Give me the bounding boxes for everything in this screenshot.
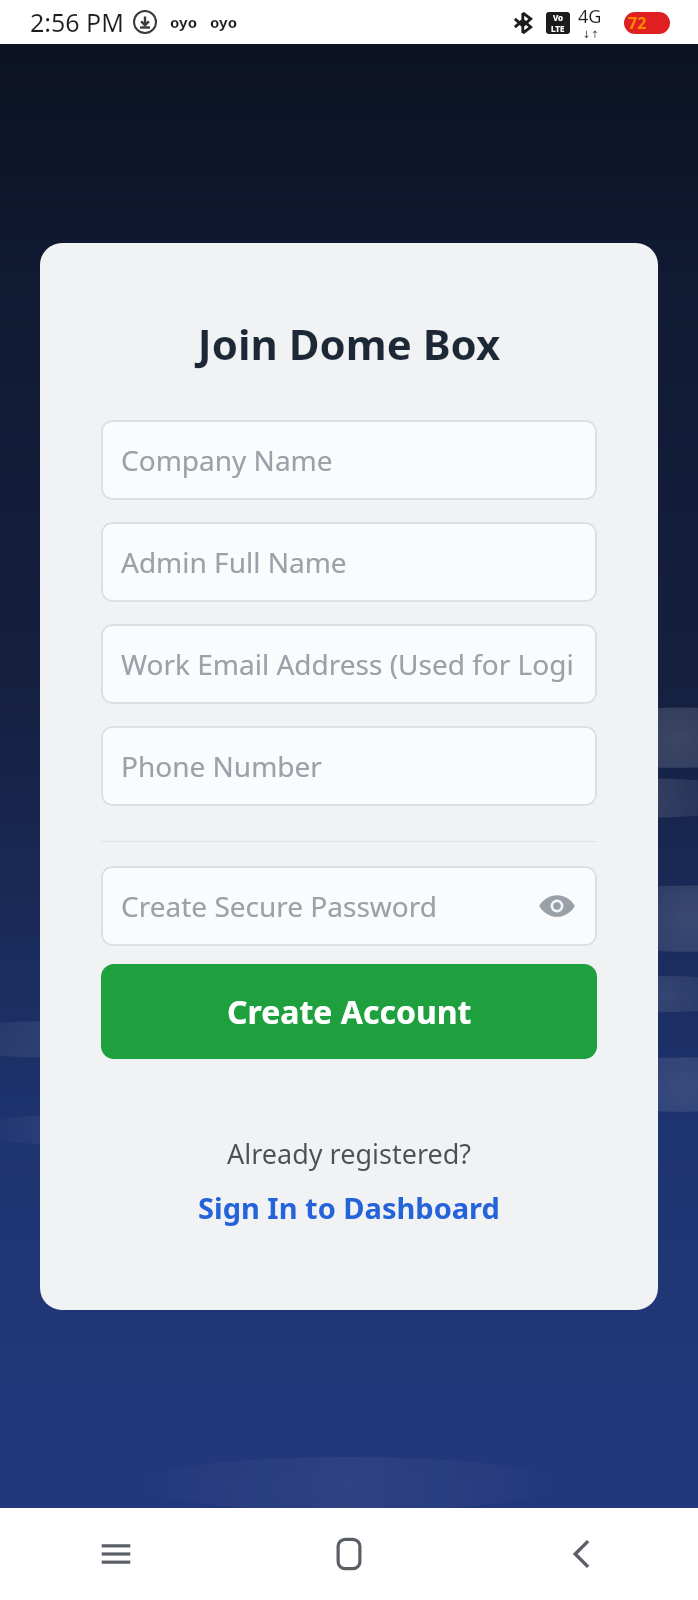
staticText: Admin Full Name (121, 543, 347, 581)
staticText: Sign In to Dashboard (198, 1188, 500, 1227)
staticText: oyo (210, 12, 238, 32)
button[interactable]: Sign In to Dashboard (101, 1188, 597, 1227)
button[interactable]: Work Email Address (Used for Logi (101, 624, 597, 704)
button[interactable]: Phone Number (101, 726, 597, 806)
button[interactable]: Home (232, 1508, 465, 1600)
button[interactable]: Back (465, 1508, 698, 1600)
staticText: Phone Number (121, 747, 322, 785)
staticText: Work Email Address (Used for Logi (121, 645, 574, 683)
button[interactable]: Create Secure Password (101, 866, 597, 946)
staticText: Create Secure Password (121, 887, 438, 925)
staticText: 4G (578, 4, 602, 29)
staticText: Already registered? (101, 1135, 597, 1172)
staticText: 2:56 PM (30, 5, 124, 39)
staticText: LTE (551, 23, 565, 34)
staticText: ↓↑ (582, 29, 599, 41)
staticText: oyo (170, 12, 198, 32)
button[interactable]: Create Account (101, 964, 597, 1059)
staticText: 72 (628, 12, 647, 34)
staticText: Join Dome Box (40, 315, 658, 372)
staticText: Company Name (121, 441, 333, 479)
staticText: Create Account (227, 990, 472, 1034)
button[interactable]: Show password (535, 884, 579, 928)
button[interactable]: Company Name (101, 420, 597, 500)
button[interactable]: Admin Full Name (101, 522, 597, 602)
staticText: Vo (553, 12, 564, 23)
button[interactable]: Recent apps (0, 1508, 232, 1600)
